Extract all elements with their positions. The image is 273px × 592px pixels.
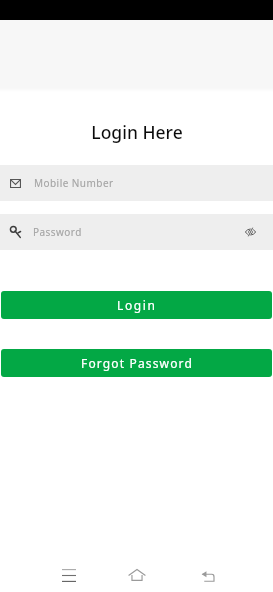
button[interactable]: Login [1,291,272,319]
button[interactable]: Password [0,214,273,250]
staticText: Login Here [91,120,183,144]
staticText: Forgot Password [81,355,193,371]
button[interactable]: Mobile Number [0,165,273,201]
staticText: Password [33,225,82,239]
staticText: Mobile Number [34,176,114,190]
button[interactable]: Forgot Password [1,349,272,377]
button[interactable]: Home [115,556,159,592]
button[interactable]: Recents [47,556,91,592]
button[interactable]: Back [185,556,229,592]
staticText: Login [117,297,157,313]
button[interactable]: Toggle password visibility [240,222,260,242]
